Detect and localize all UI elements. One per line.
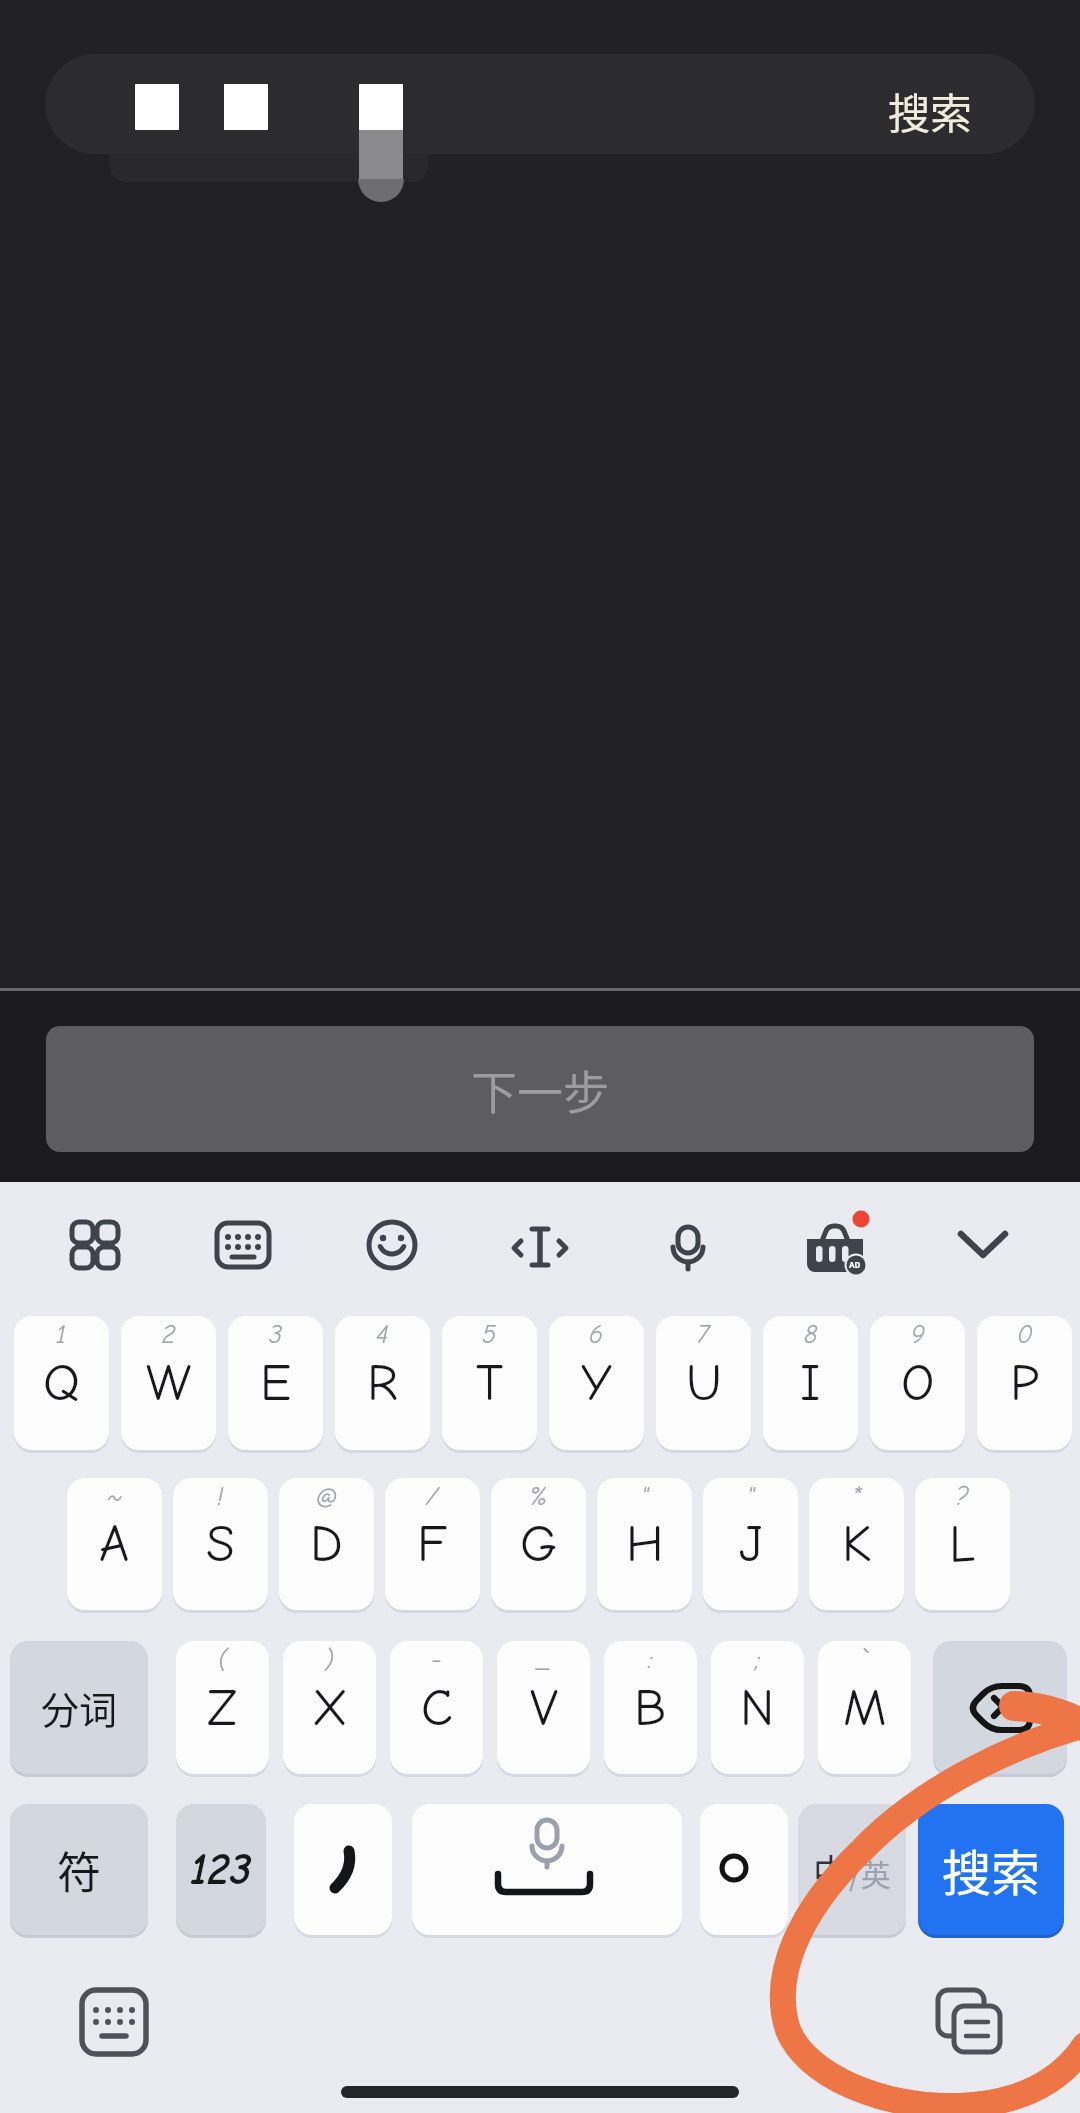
button[interactable]: 分词 — [10, 1641, 148, 1774]
staticText: : — [648, 1645, 653, 1675]
button[interactable]: 2 — [121, 1316, 216, 1450]
staticText: 5 — [482, 1320, 497, 1350]
staticText: R — [367, 1353, 398, 1413]
staticText: ` — [861, 1645, 868, 1675]
staticText: E — [260, 1353, 292, 1413]
staticText: * — [852, 1482, 862, 1512]
staticText: C — [421, 1678, 453, 1738]
button[interactable]: _ — [497, 1641, 590, 1774]
staticText: H — [626, 1514, 664, 1574]
staticText: S — [206, 1514, 235, 1574]
staticText: ~ — [107, 1482, 123, 1512]
staticText: ) — [325, 1645, 334, 1675]
button[interactable]: 9 — [870, 1316, 965, 1450]
staticText: ( — [218, 1645, 227, 1675]
staticText: 0 — [1017, 1320, 1033, 1350]
button[interactable] — [412, 1804, 682, 1935]
staticText: J — [739, 1514, 763, 1574]
staticText: % — [529, 1482, 548, 1512]
staticText: 符 — [57, 1838, 101, 1902]
button[interactable] — [45, 54, 1035, 154]
button[interactable]: 3 — [228, 1316, 323, 1450]
button[interactable]: 7 — [656, 1316, 751, 1450]
staticText: 4 — [376, 1320, 389, 1350]
button[interactable]: 符 — [10, 1804, 148, 1935]
staticText: O — [901, 1353, 935, 1413]
button[interactable]: " — [703, 1478, 798, 1610]
staticText: _ — [536, 1645, 552, 1675]
button[interactable]: 搜索 — [918, 1804, 1064, 1935]
staticText: 2 — [162, 1320, 176, 1350]
button[interactable]: ; — [711, 1641, 804, 1774]
staticText: 搜索 — [942, 1834, 1041, 1905]
button[interactable]: ! — [173, 1478, 268, 1610]
staticText: 下一步 — [471, 1056, 609, 1123]
button[interactable]: 1 — [14, 1316, 109, 1450]
staticText: @ — [316, 1482, 338, 1512]
button[interactable]: 5 — [442, 1316, 537, 1450]
staticText: Q — [43, 1353, 80, 1413]
button[interactable]: 4 — [335, 1316, 430, 1450]
staticText: B — [634, 1678, 667, 1738]
staticText: ? — [956, 1482, 969, 1512]
staticText: - — [431, 1645, 442, 1675]
button[interactable]: ) — [283, 1641, 376, 1774]
staticText: AD — [849, 1259, 861, 1270]
staticText: 9 — [911, 1320, 925, 1350]
staticText: 中/英 — [813, 1844, 891, 1896]
button[interactable]: 8 — [763, 1316, 858, 1450]
staticText: ! — [217, 1482, 224, 1512]
staticText: D — [310, 1514, 343, 1574]
staticText: Y — [581, 1353, 612, 1413]
staticText: W — [146, 1353, 192, 1413]
staticText: M — [843, 1678, 887, 1738]
staticText: 7 — [697, 1320, 710, 1350]
staticText: 6 — [589, 1320, 604, 1350]
button[interactable] — [700, 1804, 788, 1935]
staticText: 123 — [190, 1844, 252, 1895]
button[interactable]: : — [604, 1641, 697, 1774]
button[interactable]: ( — [176, 1641, 269, 1774]
staticText: X — [312, 1678, 348, 1738]
staticText: 搜索 — [888, 80, 973, 141]
staticText: N — [740, 1678, 775, 1738]
staticText: I — [800, 1353, 821, 1413]
staticText: " — [747, 1482, 755, 1512]
staticText: Z — [207, 1678, 238, 1738]
staticText: L — [949, 1514, 976, 1574]
staticText: / — [426, 1482, 439, 1512]
button[interactable]: 6 — [549, 1316, 644, 1450]
button[interactable]: / — [385, 1478, 480, 1610]
staticText: 3 — [269, 1320, 283, 1350]
button[interactable]: * — [809, 1478, 904, 1610]
staticText: 分词 — [41, 1680, 118, 1735]
button[interactable]: 0 — [977, 1316, 1072, 1450]
staticText: U — [686, 1353, 722, 1413]
staticText: " — [641, 1482, 649, 1512]
staticText: T — [476, 1353, 504, 1413]
staticText: 1 — [56, 1320, 67, 1350]
button[interactable]: ? — [915, 1478, 1010, 1610]
button[interactable] — [933, 1641, 1067, 1774]
staticText: ; — [755, 1645, 761, 1675]
staticText: V — [530, 1678, 558, 1738]
staticText: A — [99, 1514, 130, 1574]
button[interactable]: 123 — [176, 1804, 266, 1935]
staticText: P — [1010, 1353, 1040, 1413]
button[interactable]: " — [597, 1478, 692, 1610]
button[interactable] — [294, 1804, 392, 1935]
button[interactable]: - — [390, 1641, 483, 1774]
button[interactable]: % — [491, 1478, 586, 1610]
button[interactable]: ~ — [67, 1478, 162, 1610]
button[interactable]: ` — [818, 1641, 911, 1774]
button[interactable]: 下一步 — [46, 1026, 1034, 1152]
staticText: F — [417, 1514, 448, 1574]
staticText: 8 — [804, 1320, 818, 1350]
staticText: K — [842, 1514, 872, 1574]
button[interactable]: 中/英 — [798, 1804, 906, 1935]
button[interactable]: @ — [279, 1478, 374, 1610]
staticText: G — [520, 1514, 558, 1574]
